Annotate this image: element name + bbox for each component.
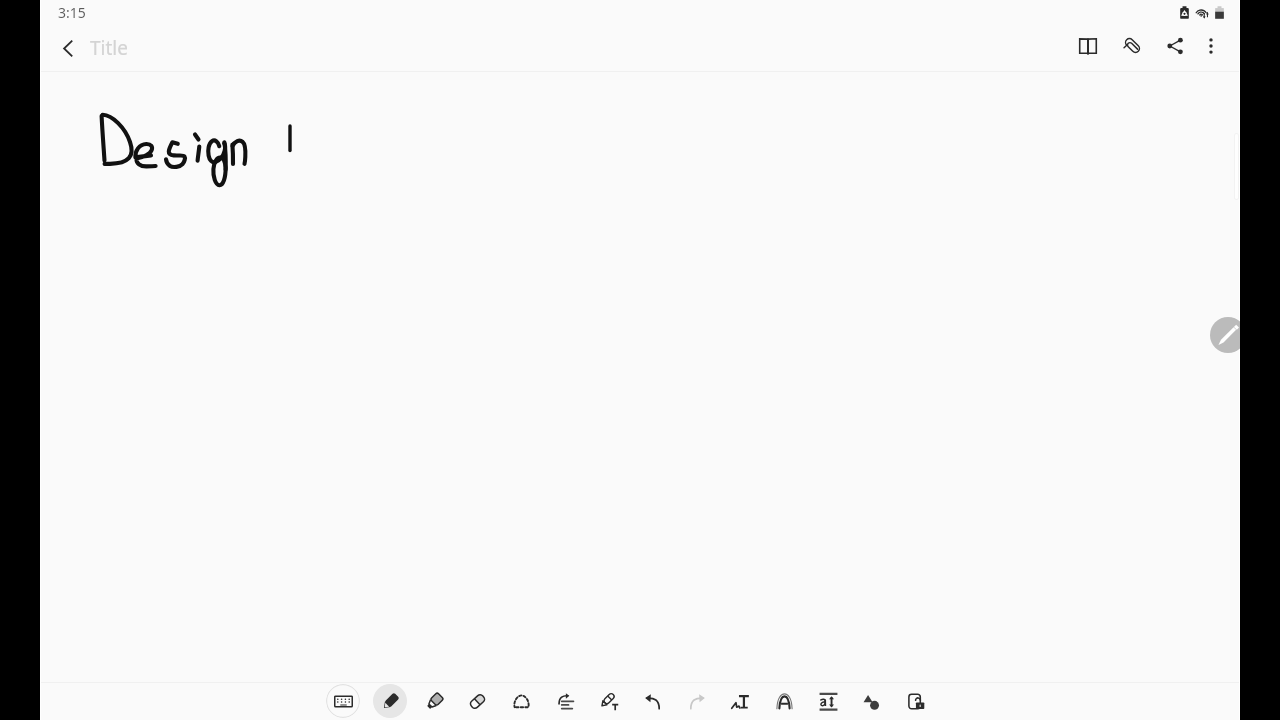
button[interactable]: Tool <box>373 684 407 718</box>
button[interactable]: Tool <box>899 684 933 718</box>
button[interactable]: More options <box>1191 26 1231 66</box>
button[interactable]: Share <box>1155 26 1195 66</box>
staticText: Title <box>90 35 128 61</box>
button[interactable]: Tool <box>326 684 360 718</box>
staticText: 3:15 <box>58 3 86 22</box>
button[interactable]: Tool <box>767 684 801 718</box>
button[interactable]: Attach file <box>1113 26 1153 66</box>
button[interactable]: Tool <box>811 684 845 718</box>
button[interactable]: Tool <box>592 684 626 718</box>
button[interactable]: Tool <box>460 684 494 718</box>
button[interactable]: View mode <box>1068 26 1108 66</box>
button[interactable]: Tool <box>504 684 538 718</box>
button[interactable]: Navigate up <box>50 30 86 66</box>
button[interactable]: Tool <box>636 684 670 718</box>
button[interactable]: Pen settings <box>1210 317 1240 353</box>
button[interactable]: Tool <box>679 684 713 718</box>
button[interactable]: Tool <box>854 684 888 718</box>
button[interactable]: Tool <box>417 684 451 718</box>
button[interactable]: Tool <box>723 684 757 718</box>
button[interactable]: Tool <box>548 684 582 718</box>
